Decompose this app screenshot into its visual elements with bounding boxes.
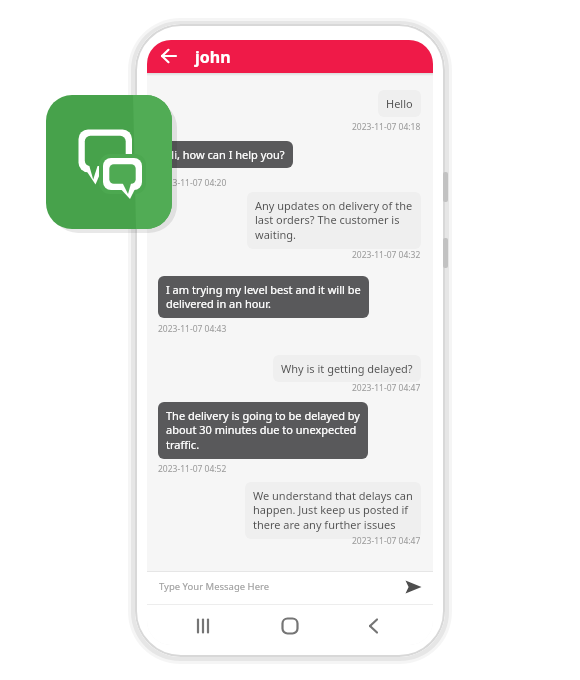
- staticText: 2023-11-07 04:43: [158, 323, 227, 335]
- staticText: Hello: [386, 96, 413, 111]
- staticText: 2023-11-07 04:47: [352, 382, 421, 394]
- button[interactable]: [405, 580, 422, 594]
- staticText: 2023-11-07 04:32: [352, 249, 421, 261]
- staticText: I am trying my level best and it will be…: [166, 282, 361, 312]
- button[interactable]: john: [147, 40, 433, 73]
- button[interactable]: [276, 618, 304, 634]
- staticText: 2023-11-07 04:18: [352, 121, 421, 133]
- button[interactable]: [359, 618, 387, 634]
- staticText: 2023-11-07 04:20: [158, 177, 227, 189]
- staticText: We understand that delays can happen. Ju…: [253, 488, 413, 533]
- staticText: 2023-11-07 04:47: [352, 535, 421, 547]
- staticText: The delivery is going to be delayed by a…: [166, 408, 360, 453]
- button[interactable]: Type Your Message Here: [147, 571, 433, 604]
- staticText: Any updates on delivery of the last orde…: [255, 198, 413, 243]
- button[interactable]: [191, 618, 219, 634]
- button[interactable]: [46, 95, 172, 229]
- staticText: Hi, how can I help you?: [166, 147, 285, 162]
- staticText: Why is it getting delayed?: [281, 361, 413, 376]
- staticText: john: [195, 46, 231, 68]
- staticText: 2023-11-07 04:52: [158, 463, 227, 475]
- staticText: Type Your Message Here: [159, 580, 270, 593]
